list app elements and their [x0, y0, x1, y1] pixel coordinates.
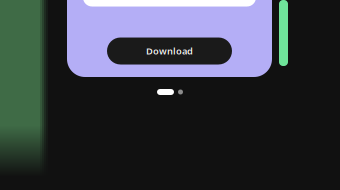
staticText: Download: [146, 45, 193, 57]
button[interactable]: Download: [107, 37, 232, 64]
